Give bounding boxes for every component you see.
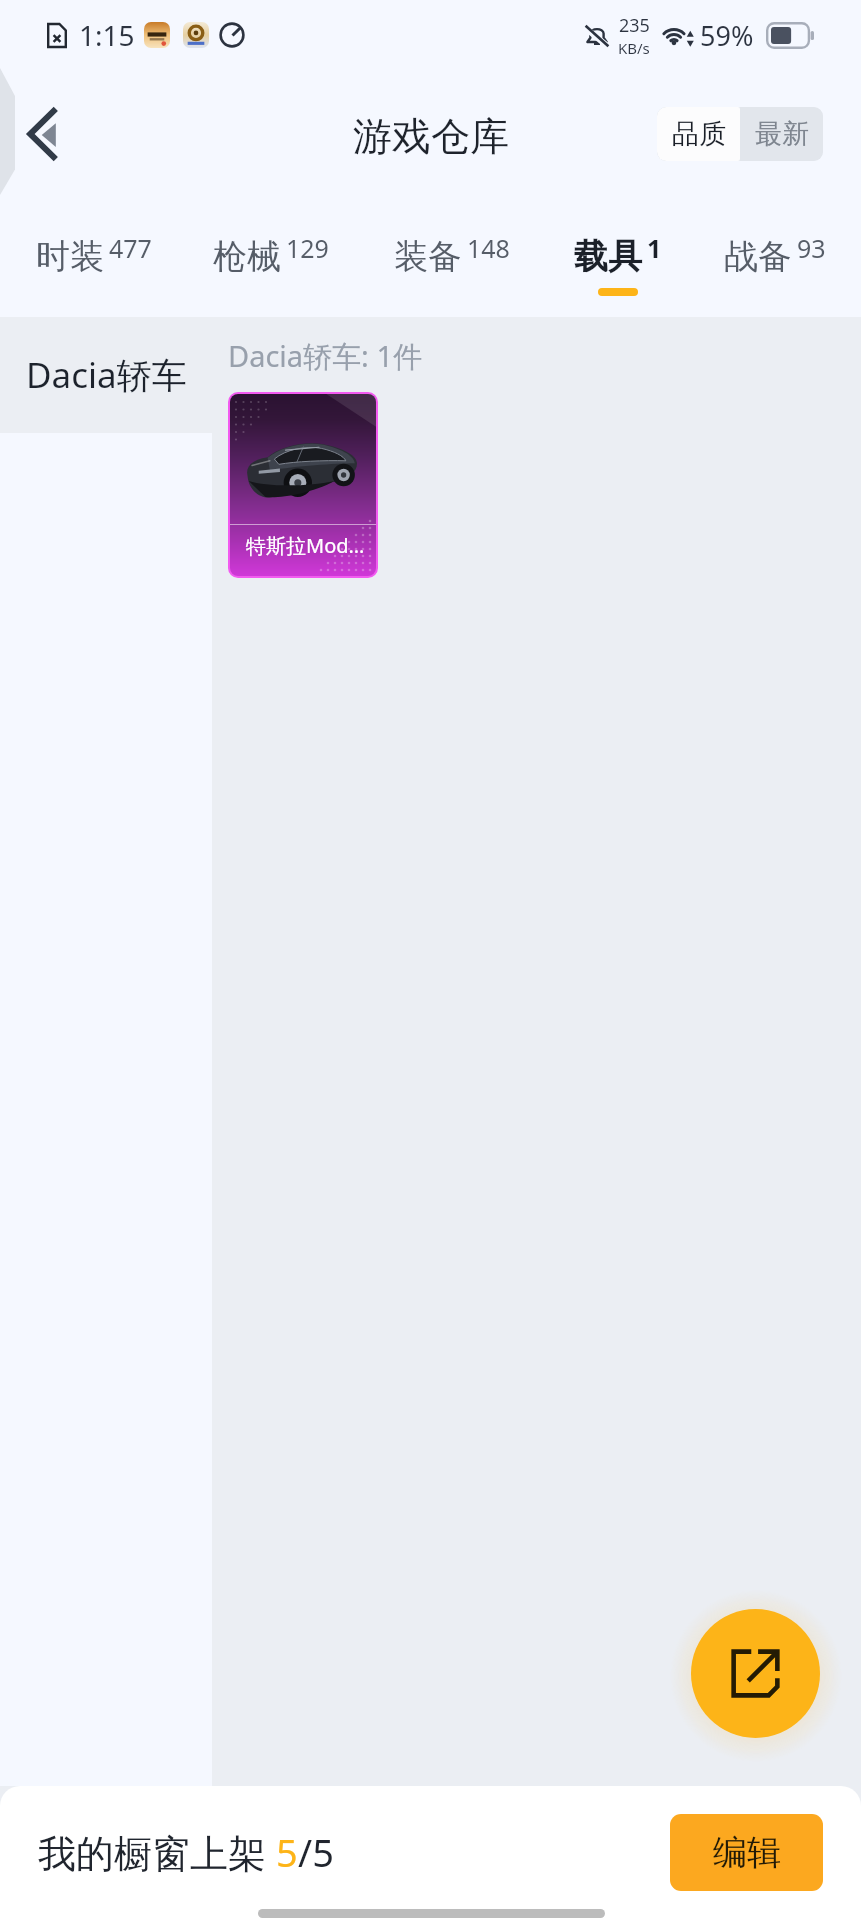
staticText: 编辑 (713, 1831, 781, 1874)
button[interactable]: 品质 (657, 107, 740, 161)
staticText: 148 (467, 231, 510, 265)
staticText: 59% (700, 17, 754, 54)
staticText: 品质 (672, 117, 726, 151)
button[interactable]: 特斯拉Mod… (230, 394, 376, 576)
staticText: 129 (286, 231, 329, 265)
button[interactable]: 载具 (546, 197, 690, 317)
staticText: /5 (298, 1826, 334, 1878)
button[interactable]: 战备 (703, 197, 847, 317)
button[interactable]: 最新 (740, 107, 823, 161)
staticText: 战备 (724, 235, 792, 278)
staticText: 5 (276, 1826, 298, 1878)
staticText: 特斯拉Mod… (246, 532, 365, 559)
staticText: 我的橱窗上架 (38, 1826, 276, 1878)
staticText: Dacia轿车 (26, 351, 187, 399)
button[interactable]: Dacia轿车 (0, 317, 212, 433)
button[interactable]: 时装 (22, 197, 166, 317)
button[interactable]: Back (12, 96, 74, 172)
button[interactable]: Open in new window (691, 1609, 820, 1738)
staticText: 枪械 (213, 235, 281, 278)
staticText: 装备 (394, 235, 462, 278)
staticText: 载具 (574, 235, 642, 278)
button[interactable]: 编辑 (670, 1814, 823, 1891)
staticText: KB/s (618, 38, 650, 58)
staticText: 游戏仓库 (353, 112, 509, 161)
staticText: 235 (619, 13, 650, 38)
staticText: Dacia轿车: 1件 (228, 336, 423, 376)
staticText: 477 (109, 231, 152, 265)
staticText: 时装 (36, 235, 104, 278)
button[interactable]: 装备 (380, 197, 524, 317)
staticText: 最新 (755, 117, 809, 151)
staticText: 1:15 (79, 16, 135, 54)
staticText: 1 (647, 231, 662, 265)
staticText: 93 (797, 231, 826, 265)
button[interactable]: 枪械 (199, 197, 343, 317)
